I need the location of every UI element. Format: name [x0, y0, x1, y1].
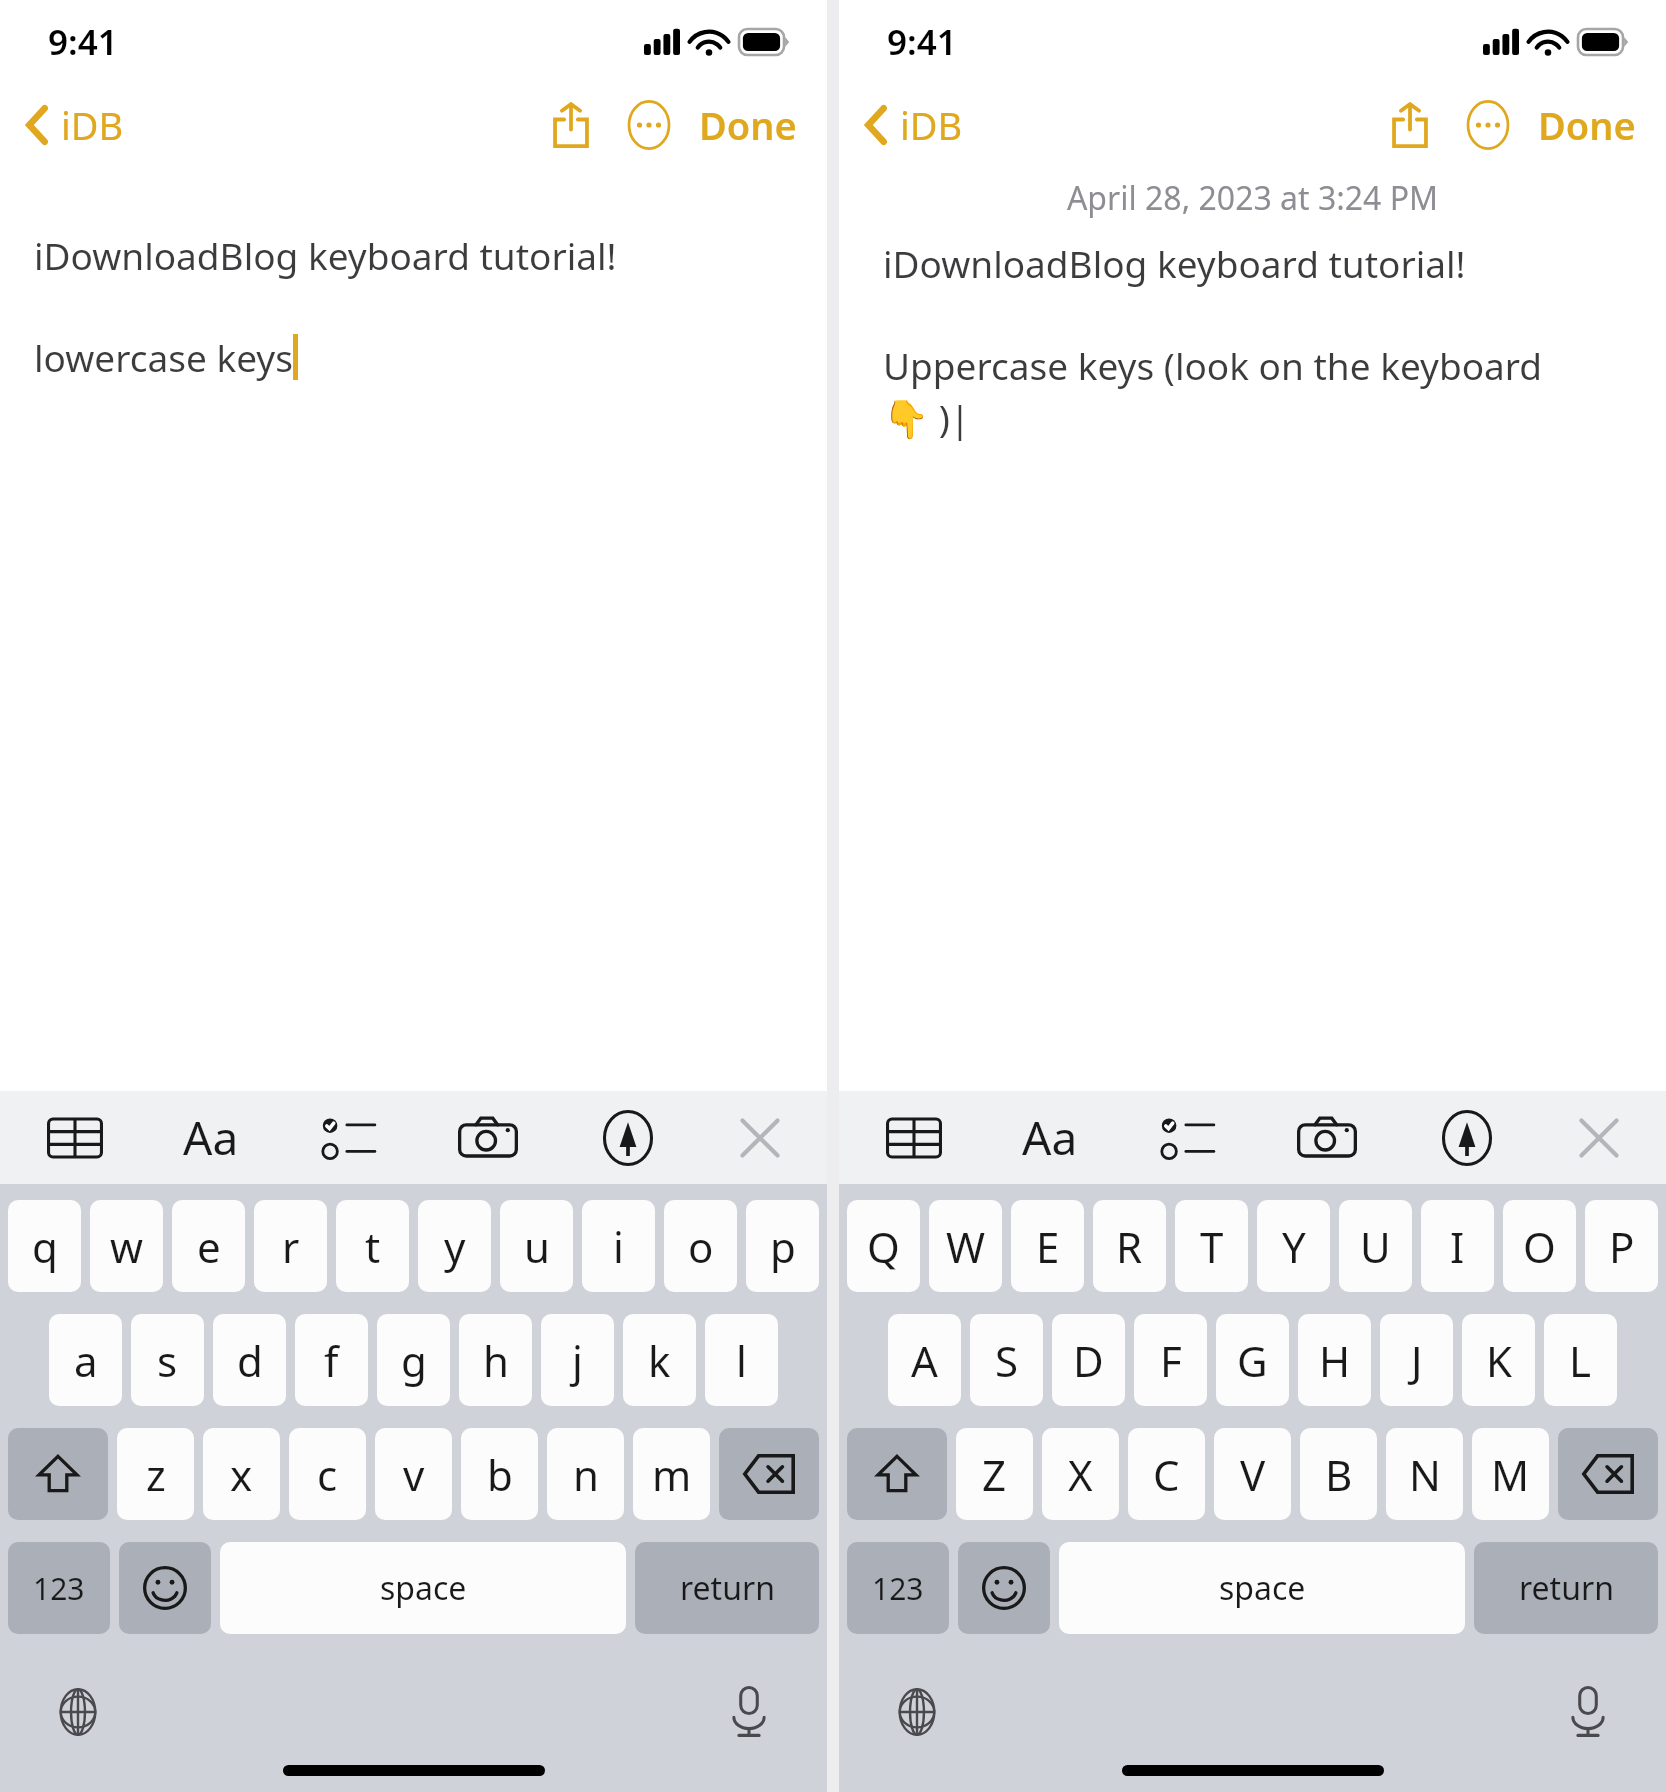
- button[interactable]: April 28, 2023 at 3:24 PM: [839, 166, 1666, 1091]
- button[interactable]: Backspace: [719, 1428, 819, 1520]
- button[interactable]: y: [418, 1200, 491, 1292]
- button[interactable]: F: [1134, 1314, 1207, 1406]
- button[interactable]: m: [633, 1428, 710, 1520]
- button[interactable]: v: [375, 1428, 452, 1520]
- button[interactable]: Markup: [1432, 1103, 1502, 1173]
- button[interactable]: Backspace: [1558, 1428, 1658, 1520]
- staticText: S: [995, 1332, 1019, 1389]
- button[interactable]: Aa: [1016, 1106, 1084, 1169]
- button[interactable]: Q: [847, 1200, 920, 1292]
- button[interactable]: 123: [8, 1542, 110, 1634]
- button[interactable]: j: [541, 1314, 614, 1406]
- button[interactable]: return: [635, 1542, 819, 1634]
- button[interactable]: I: [1421, 1200, 1494, 1292]
- button[interactable]: R: [1093, 1200, 1166, 1292]
- button[interactable]: n: [547, 1428, 624, 1520]
- button[interactable]: V: [1214, 1428, 1291, 1520]
- button[interactable]: Done: [689, 91, 807, 159]
- button[interactable]: iDownloadBlog keyboard tutorial!: [0, 166, 827, 1091]
- button[interactable]: h: [459, 1314, 532, 1406]
- button[interactable]: Shift: [8, 1428, 108, 1520]
- button[interactable]: r: [254, 1200, 327, 1292]
- button[interactable]: H: [1298, 1314, 1371, 1406]
- button[interactable]: A: [888, 1314, 961, 1406]
- button[interactable]: Y: [1257, 1200, 1330, 1292]
- button[interactable]: M: [1472, 1428, 1549, 1520]
- button[interactable]: G: [1216, 1314, 1289, 1406]
- button[interactable]: U: [1339, 1200, 1412, 1292]
- button[interactable]: e: [172, 1200, 245, 1292]
- button[interactable]: Close: [731, 1109, 789, 1167]
- button[interactable]: c: [289, 1428, 366, 1520]
- button[interactable]: u: [500, 1200, 573, 1292]
- button[interactable]: Next keyboard: [885, 1680, 949, 1744]
- button[interactable]: Dictation: [1556, 1680, 1620, 1744]
- button[interactable]: Z: [956, 1428, 1033, 1520]
- button[interactable]: space: [220, 1542, 626, 1634]
- button[interactable]: Dictation: [717, 1680, 781, 1744]
- button[interactable]: Share: [539, 93, 603, 157]
- staticText: k: [648, 1332, 671, 1389]
- staticText: B: [1325, 1446, 1353, 1503]
- button[interactable]: Aa: [177, 1106, 245, 1169]
- button[interactable]: z: [117, 1428, 194, 1520]
- staticText: g: [401, 1332, 427, 1389]
- button[interactable]: k: [623, 1314, 696, 1406]
- button[interactable]: t: [336, 1200, 409, 1292]
- staticText: J: [1411, 1332, 1423, 1389]
- button[interactable]: W: [929, 1200, 1002, 1292]
- button[interactable]: w: [90, 1200, 163, 1292]
- button[interactable]: Emoji: [958, 1542, 1050, 1634]
- button[interactable]: Checklist: [1152, 1103, 1222, 1173]
- button[interactable]: i: [582, 1200, 655, 1292]
- button[interactable]: return: [1474, 1542, 1658, 1634]
- button[interactable]: Shift: [847, 1428, 947, 1520]
- button[interactable]: f: [295, 1314, 368, 1406]
- button[interactable]: l: [705, 1314, 778, 1406]
- button[interactable]: E: [1011, 1200, 1084, 1292]
- button[interactable]: O: [1503, 1200, 1576, 1292]
- button[interactable]: More options: [617, 93, 681, 157]
- button[interactable]: a: [49, 1314, 122, 1406]
- button[interactable]: S: [970, 1314, 1043, 1406]
- button[interactable]: Markup: [593, 1103, 663, 1173]
- button[interactable]: Camera: [1290, 1101, 1364, 1175]
- button[interactable]: B: [1300, 1428, 1377, 1520]
- button[interactable]: More options: [1456, 93, 1520, 157]
- button[interactable]: d: [213, 1314, 286, 1406]
- button[interactable]: L: [1544, 1314, 1617, 1406]
- button[interactable]: Close: [1570, 1109, 1628, 1167]
- button[interactable]: C: [1128, 1428, 1205, 1520]
- staticText: c: [317, 1446, 338, 1503]
- button[interactable]: K: [1462, 1314, 1535, 1406]
- button[interactable]: Table: [879, 1103, 949, 1173]
- button[interactable]: P: [1585, 1200, 1658, 1292]
- button[interactable]: Share: [1378, 93, 1442, 157]
- button[interactable]: s: [131, 1314, 204, 1406]
- button[interactable]: x: [203, 1428, 280, 1520]
- button[interactable]: o: [664, 1200, 737, 1292]
- button[interactable]: space: [1059, 1542, 1465, 1634]
- staticText: iDownloadBlog keyboard tutorial!: [883, 238, 1466, 288]
- button[interactable]: b: [461, 1428, 538, 1520]
- button[interactable]: q: [8, 1200, 81, 1292]
- button[interactable]: Camera: [451, 1101, 525, 1175]
- staticText: return: [1519, 1566, 1614, 1610]
- button[interactable]: N: [1386, 1428, 1463, 1520]
- button[interactable]: Emoji: [119, 1542, 211, 1634]
- button[interactable]: iDB: [18, 91, 132, 159]
- button[interactable]: T: [1175, 1200, 1248, 1292]
- button[interactable]: X: [1042, 1428, 1119, 1520]
- staticText: 123: [33, 1568, 85, 1609]
- button[interactable]: D: [1052, 1314, 1125, 1406]
- button[interactable]: Done: [1528, 91, 1646, 159]
- staticText: G: [1237, 1332, 1268, 1389]
- button[interactable]: g: [377, 1314, 450, 1406]
- button[interactable]: iDB: [857, 91, 971, 159]
- button[interactable]: 123: [847, 1542, 949, 1634]
- button[interactable]: Checklist: [313, 1103, 383, 1173]
- button[interactable]: J: [1380, 1314, 1453, 1406]
- button[interactable]: p: [746, 1200, 819, 1292]
- button[interactable]: Table: [40, 1103, 110, 1173]
- button[interactable]: Next keyboard: [46, 1680, 110, 1744]
